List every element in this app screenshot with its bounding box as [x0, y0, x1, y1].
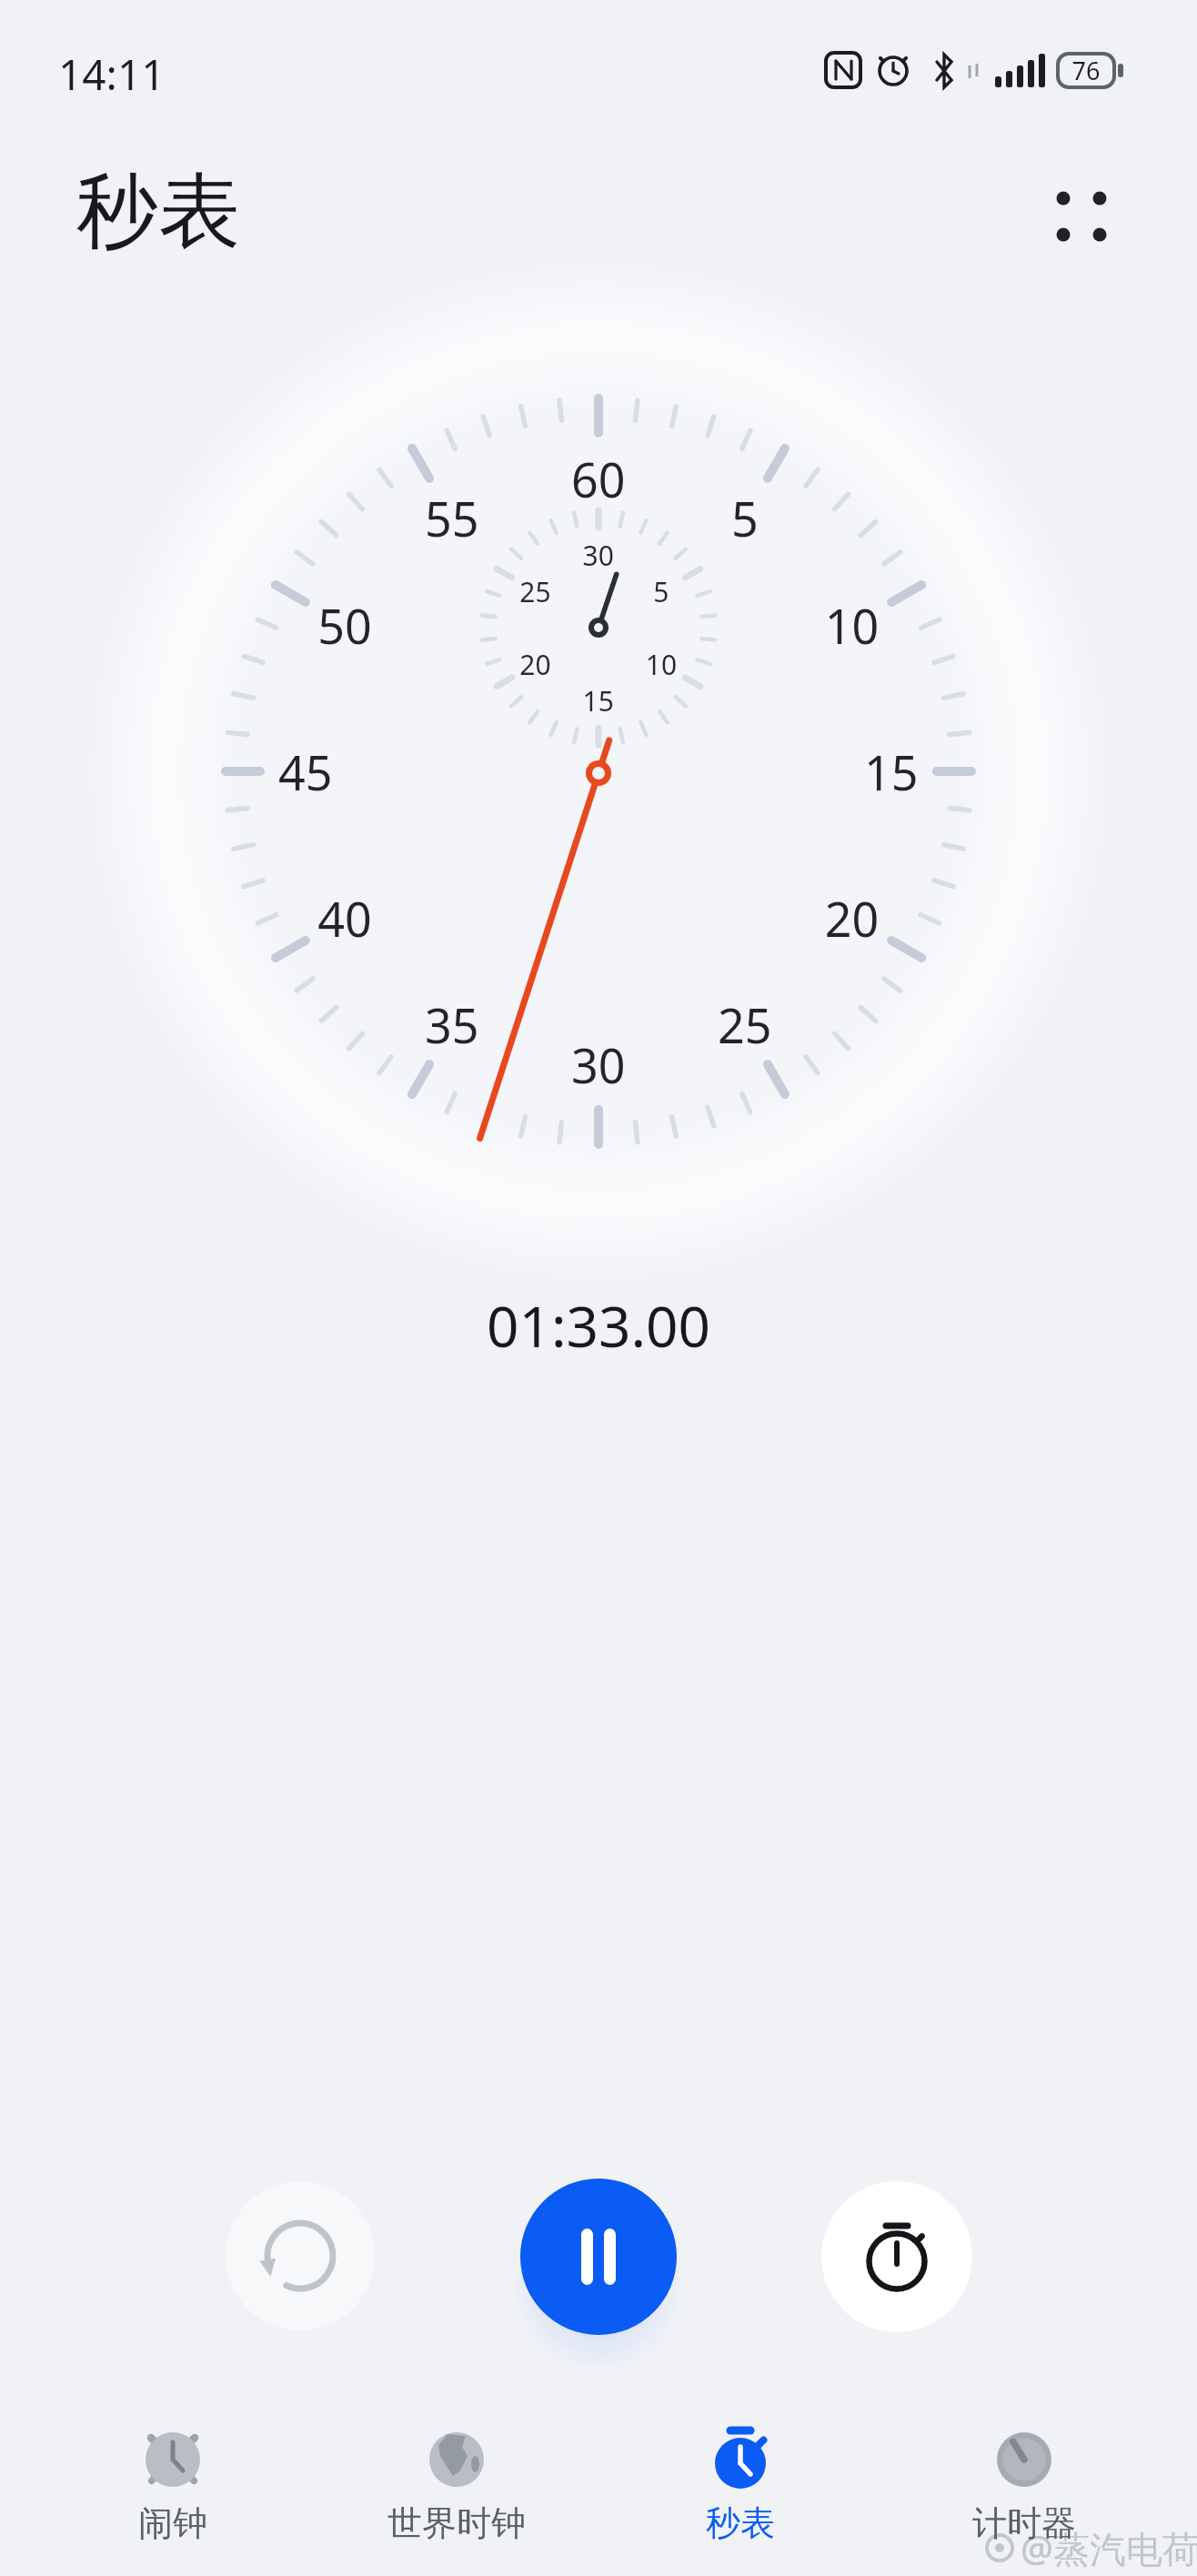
staticText: 闹钟	[138, 2501, 207, 2545]
staticText: 世界时钟	[387, 2501, 526, 2545]
staticText: 01:33.00	[487, 1287, 711, 1363]
staticText: 秒表	[706, 2501, 775, 2545]
button[interactable]: 计时器	[910, 2394, 1138, 2567]
staticText: 计时器	[972, 2501, 1076, 2545]
staticText: 秒表	[76, 160, 240, 263]
button[interactable]: 闹钟	[59, 2394, 287, 2567]
button[interactable]	[1037, 169, 1128, 264]
button[interactable]	[520, 2179, 677, 2335]
button[interactable]	[821, 2181, 972, 2332]
button[interactable]	[226, 2181, 375, 2330]
button[interactable]: 世界时钟	[343, 2394, 570, 2567]
button[interactable]: 秒表	[627, 2394, 854, 2567]
staticText: 14:11	[58, 45, 166, 103]
